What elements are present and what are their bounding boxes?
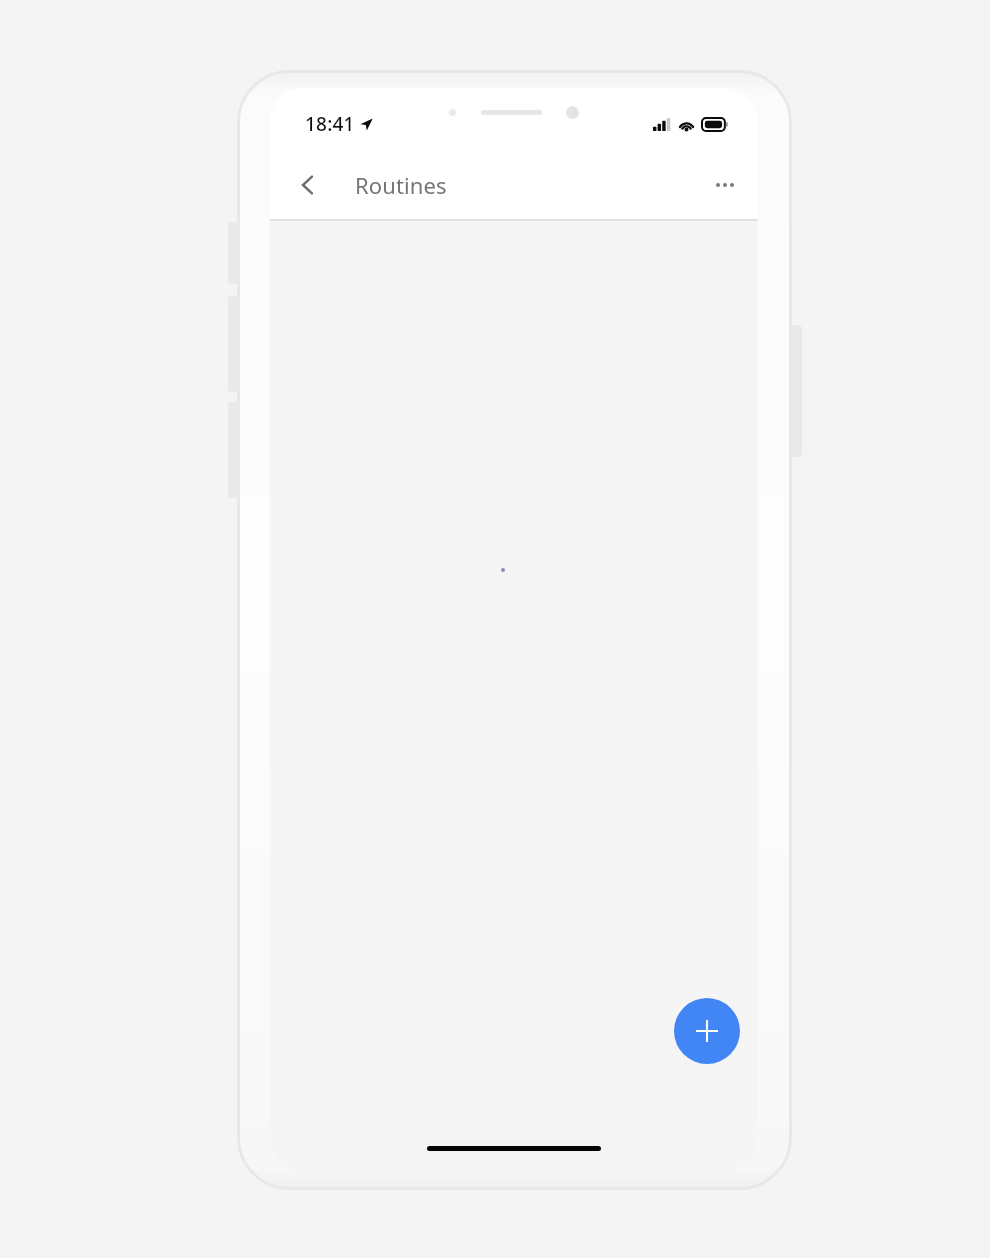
staticText: 18:41 bbox=[305, 111, 355, 137]
button[interactable]: More options bbox=[701, 161, 749, 209]
button[interactable]: Add routine bbox=[674, 998, 740, 1064]
button[interactable]: Back bbox=[284, 161, 332, 209]
staticText: Routines bbox=[355, 170, 447, 200]
